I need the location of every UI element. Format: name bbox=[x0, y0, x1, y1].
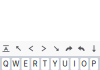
button[interactable]: O bbox=[80, 58, 88, 70]
button[interactable]: Indent bbox=[50, 41, 62, 56]
button[interactable]: Undo bbox=[75, 41, 87, 56]
button[interactable]: Text format bbox=[0, 41, 12, 56]
staticText: E bbox=[23, 60, 27, 68]
button[interactable]: P bbox=[90, 58, 98, 70]
staticText: I bbox=[73, 60, 75, 68]
staticText: Q bbox=[3, 60, 9, 68]
button[interactable]: T bbox=[41, 58, 49, 70]
button[interactable]: Outdent bbox=[13, 41, 25, 56]
button[interactable]: Y bbox=[51, 58, 59, 70]
button[interactable]: Hide keyboard bbox=[88, 41, 100, 56]
staticText: O bbox=[81, 60, 87, 68]
button[interactable]: I bbox=[70, 58, 78, 70]
button[interactable]: U bbox=[61, 58, 69, 70]
staticText: R bbox=[33, 60, 38, 68]
staticText: U bbox=[62, 60, 67, 68]
button[interactable]: Q bbox=[2, 58, 10, 70]
button[interactable]: W bbox=[12, 58, 20, 70]
staticText: Y bbox=[52, 60, 57, 68]
staticText: T bbox=[43, 60, 48, 68]
button[interactable]: E bbox=[21, 58, 29, 70]
button[interactable]: Next field bbox=[38, 41, 50, 56]
staticText: W bbox=[12, 60, 19, 68]
button[interactable]: Redo bbox=[63, 41, 75, 56]
button[interactable]: Previous field bbox=[25, 41, 37, 56]
button[interactable]: R bbox=[31, 58, 39, 70]
staticText: P bbox=[92, 60, 97, 68]
